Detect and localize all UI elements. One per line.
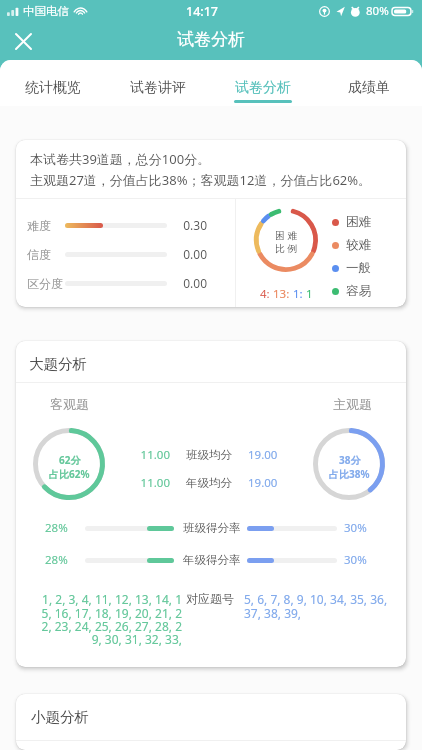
staticText: 比 例 — [275, 242, 298, 255]
staticText: 对应题号 — [186, 591, 238, 606]
staticText: 占比38% — [329, 467, 370, 481]
staticText: 30% — [344, 520, 370, 536]
staticText: 信度 — [27, 247, 65, 262]
staticText: 大题分析 — [29, 355, 87, 373]
staticText: 小题分析 — [31, 708, 89, 726]
staticText: 试卷讲评 — [130, 79, 186, 97]
staticText: 80% — [366, 3, 389, 19]
staticText: 28% — [45, 552, 74, 568]
staticText: 11.00 — [138, 447, 170, 463]
staticText: 0.00 — [167, 246, 207, 262]
staticText: 4: — [260, 286, 270, 302]
staticText: 成绩单 — [348, 79, 390, 97]
staticText: 年级均分 — [186, 476, 234, 490]
staticText: 1, 2, 3, 4, 11, 12, 13, 14, 1 5, 16, 17,… — [40, 591, 182, 647]
button[interactable]: 关闭 — [9, 27, 37, 55]
staticText: 主观题27道，分值占比38%；客观题12道，分值占比62%。 — [30, 171, 372, 189]
staticText: 0.30 — [167, 217, 207, 233]
staticText: 客观题 — [50, 396, 89, 412]
staticText: 62分 — [59, 453, 81, 467]
staticText: 13: — [273, 286, 290, 302]
staticText: 较难 — [346, 237, 371, 253]
staticText: 中国电信 — [23, 4, 69, 18]
staticText: 38分 — [339, 453, 361, 467]
staticText: 30% — [344, 552, 370, 568]
staticText: 年级得分率 — [183, 553, 241, 567]
staticText: 一般 — [346, 260, 371, 276]
staticText: 5, 6, 7, 8, 9, 10, 34, 35, 36, 37, 38, 3… — [244, 591, 402, 621]
staticText: 占比62% — [49, 467, 90, 481]
staticText: 19.00 — [248, 447, 280, 463]
staticText: 区分度 — [27, 276, 65, 291]
button[interactable]: 成绩单 — [316, 60, 422, 106]
staticText: 容易 — [346, 283, 371, 299]
staticText: 0.00 — [167, 275, 207, 291]
staticText: 主观题 — [333, 396, 372, 412]
staticText: 难度 — [27, 218, 65, 233]
staticText: 试卷分析 — [177, 29, 245, 50]
staticText: 14:17 — [186, 3, 219, 20]
button[interactable]: 试卷分析 — [210, 60, 316, 106]
button[interactable]: 统计概览 — [0, 60, 105, 106]
staticText: 班级得分率 — [183, 521, 241, 535]
staticText: 1 — [306, 286, 313, 302]
staticText: 试卷分析 — [235, 79, 291, 97]
staticText: 班级均分 — [186, 448, 234, 462]
staticText: 1: — [293, 286, 303, 302]
staticText: 统计概览 — [25, 79, 81, 97]
staticText: 11.00 — [138, 475, 170, 491]
button[interactable]: 试卷讲评 — [105, 60, 210, 106]
staticText: 困难 — [346, 214, 371, 230]
staticText: 28% — [45, 520, 74, 536]
staticText: 本试卷共39道题，总分100分。 — [30, 150, 211, 168]
staticText: 困 难 — [275, 229, 298, 242]
staticText: 19.00 — [248, 475, 280, 491]
